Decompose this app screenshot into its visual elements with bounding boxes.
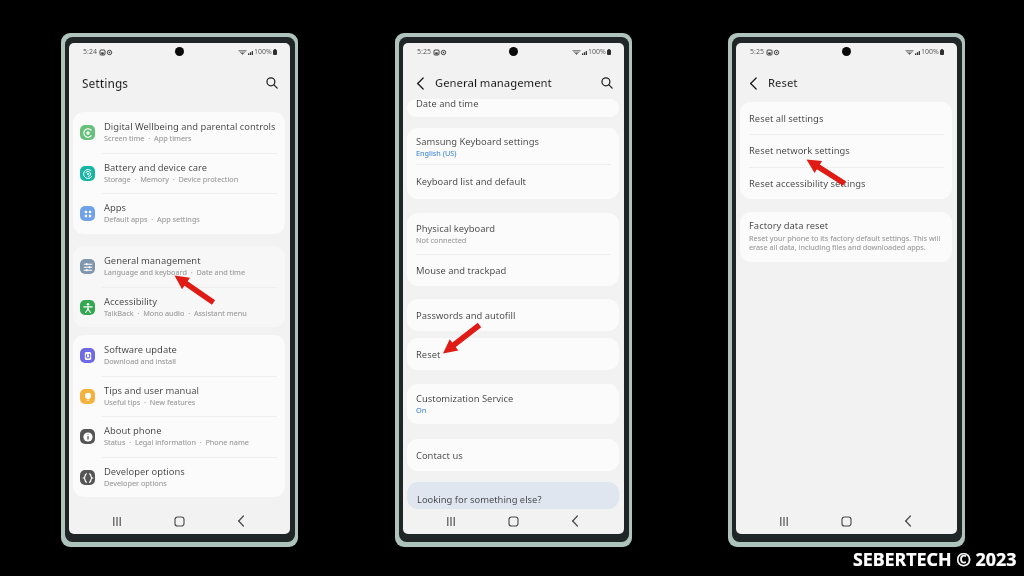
staticText: Reset all settings xyxy=(749,112,824,125)
staticText: General management xyxy=(435,75,552,90)
staticText: Not connected xyxy=(416,235,467,245)
button[interactable]: About phone xyxy=(73,416,285,457)
button[interactable]: Physical keyboard xyxy=(407,213,619,254)
staticText: Reset xyxy=(768,75,798,90)
staticText: Settings xyxy=(82,75,128,91)
button[interactable]: Software update xyxy=(73,335,285,376)
button[interactable]: Navigate up xyxy=(744,74,762,92)
staticText: On xyxy=(416,405,427,415)
staticText: Contact us xyxy=(416,449,463,462)
staticText: Screen time · App timers xyxy=(104,133,192,143)
button[interactable]: Back xyxy=(893,506,923,534)
staticText: Looking for something else? xyxy=(417,493,542,506)
staticText: Mouse and trackpad xyxy=(416,264,507,277)
button[interactable]: Reset accessibility settings xyxy=(740,167,952,199)
button[interactable]: Back xyxy=(560,506,590,534)
staticText: Tips and user manual xyxy=(104,384,199,397)
staticText: Developer options xyxy=(104,465,185,478)
staticText: Apps xyxy=(104,201,127,214)
button[interactable]: Search xyxy=(598,74,616,92)
staticText: 5:24 xyxy=(83,47,97,57)
staticText: Accessibility xyxy=(104,295,157,308)
staticText: Passwords and autofill xyxy=(416,309,516,322)
button[interactable]: Contact us xyxy=(407,439,619,471)
staticText: 5:25 xyxy=(417,47,431,57)
staticText: TalkBack · Mono audio · Assistant menu xyxy=(104,308,247,318)
button[interactable]: General management xyxy=(73,246,285,287)
staticText: Factory data reset xyxy=(749,219,829,232)
button[interactable]: Home xyxy=(164,506,194,534)
button[interactable]: Reset network settings xyxy=(740,134,952,166)
staticText: 100% xyxy=(254,47,272,57)
staticText: Digital Wellbeing and parental controls xyxy=(104,120,276,133)
staticText: Useful tips · New features xyxy=(104,397,196,407)
button[interactable]: Navigate up xyxy=(411,74,429,92)
staticText: Default apps · App settings xyxy=(104,214,200,224)
staticText: Developer options xyxy=(104,478,167,488)
staticText: English (US) xyxy=(416,148,457,158)
staticText: Download and install xyxy=(104,356,176,366)
button[interactable]: Home xyxy=(831,506,861,534)
button[interactable]: Customization Service xyxy=(407,384,619,422)
button[interactable]: Apps xyxy=(73,193,285,234)
staticText: 100% xyxy=(588,47,606,57)
button[interactable]: Date and time xyxy=(407,99,619,117)
button[interactable]: Back xyxy=(226,506,256,534)
staticText: SEBERTECH © 2023 xyxy=(853,547,1017,571)
button[interactable]: Tips and user manual xyxy=(73,376,285,417)
button[interactable]: Digital Wellbeing and parental controls xyxy=(73,112,285,153)
staticText: Reset accessibility settings xyxy=(749,177,866,190)
staticText: Language and keyboard · Date and time xyxy=(104,267,245,277)
button[interactable]: Home xyxy=(498,506,528,534)
staticText: Samsung Keyboard settings xyxy=(416,135,539,148)
button[interactable]: Accessibility xyxy=(73,287,285,327)
button[interactable]: Recent apps xyxy=(769,506,799,534)
staticText: General management xyxy=(104,254,201,267)
staticText: Battery and device care xyxy=(104,161,207,174)
staticText: About phone xyxy=(104,424,162,437)
staticText: Physical keyboard xyxy=(416,222,495,235)
staticText: 5:25 xyxy=(750,47,764,57)
staticText: 100% xyxy=(921,47,939,57)
button[interactable]: Reset xyxy=(407,338,619,370)
staticText: Reset xyxy=(416,348,441,361)
button[interactable]: Reset all settings xyxy=(740,102,952,134)
staticText: Date and time xyxy=(416,99,479,110)
staticText: Customization Service xyxy=(416,392,514,405)
button[interactable]: Developer options xyxy=(73,457,285,497)
button[interactable]: Samsung Keyboard settings xyxy=(407,128,619,164)
button[interactable]: Battery and device care xyxy=(73,153,285,194)
staticText: Software update xyxy=(104,343,177,356)
staticText: Reset network settings xyxy=(749,144,850,157)
button[interactable]: Mouse and trackpad xyxy=(407,254,619,286)
staticText: Status · Legal information · Phone name xyxy=(104,437,249,447)
staticText: Storage · Memory · Device protection xyxy=(104,174,239,184)
button[interactable]: Factory data reset xyxy=(740,212,952,262)
staticText: Reset your phone to its factory default … xyxy=(749,233,941,252)
button[interactable]: Recent apps xyxy=(102,506,132,534)
staticText: Keyboard list and default xyxy=(416,175,526,188)
button[interactable]: Search xyxy=(263,74,281,92)
button[interactable]: Passwords and autofill xyxy=(407,299,619,331)
button[interactable]: Looking for something else? xyxy=(407,482,619,509)
button[interactable]: Recent apps xyxy=(436,506,466,534)
button[interactable]: Keyboard list and default xyxy=(407,164,619,199)
